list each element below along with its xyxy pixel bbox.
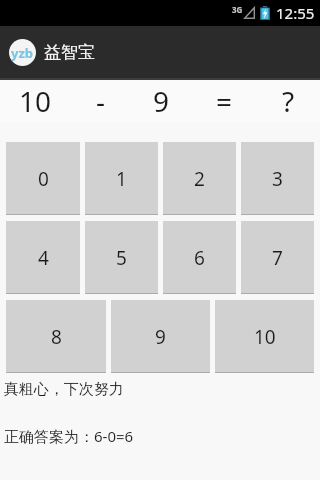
staticText: 0 [38,166,49,192]
button[interactable]: 0 [6,142,80,215]
staticText: 9 [153,82,170,120]
staticText: 10 [254,324,276,350]
staticText: 7 [272,245,283,271]
button[interactable]: 10 [215,300,314,373]
staticText: 4 [38,245,49,271]
staticText: ? [282,82,295,120]
button[interactable]: yzb [9,39,95,66]
other: Signal strength [244,7,255,19]
staticText: 3G [232,4,243,15]
button[interactable]: 1 [85,142,158,215]
staticText: 正确答案为：6-0=6 [4,426,134,446]
button[interactable]: 6 [163,221,236,294]
staticText: = [216,82,233,120]
button[interactable]: 9 [111,300,210,373]
staticText: 5 [116,245,127,271]
staticText: 益智宝 [44,42,95,63]
button[interactable]: 7 [241,221,314,294]
button[interactable]: 5 [85,221,158,294]
staticText: - [96,82,106,120]
staticText: 8 [51,324,62,350]
staticText: 12:55 [276,3,315,23]
button[interactable]: 4 [6,221,80,294]
button[interactable]: 8 [6,300,106,373]
staticText: yzb [11,44,34,62]
staticText: 2 [194,166,205,192]
staticText: 真粗心，下次努力 [4,380,124,399]
other: Battery charging [260,6,270,20]
button[interactable]: 2 [163,142,236,215]
staticText: 1 [116,166,127,192]
staticText: 10 [19,82,52,120]
staticText: 3 [272,166,283,192]
button[interactable]: 3 [241,142,314,215]
staticText: 9 [155,324,166,350]
staticText: 6 [194,245,205,271]
